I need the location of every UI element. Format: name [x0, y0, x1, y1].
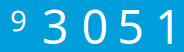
staticText: 9	[10, 0, 27, 39]
button[interactable]: Counter 9 3 0 5 1	[0, 0, 184, 52]
staticText: 5	[117, 0, 144, 52]
staticText: 3	[42, 0, 69, 52]
staticText: 0	[81, 0, 108, 52]
staticText: 1	[155, 0, 182, 52]
